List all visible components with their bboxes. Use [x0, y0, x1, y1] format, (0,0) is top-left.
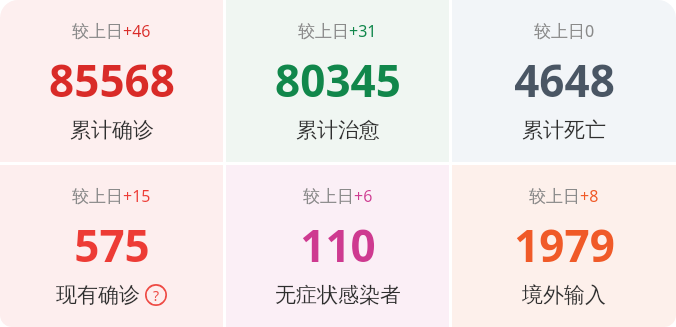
- staticText: 累计死亡: [522, 117, 606, 143]
- staticText: 575: [74, 215, 150, 275]
- button[interactable]: 较上日: [226, 165, 449, 327]
- button[interactable]: 较上日: [0, 165, 223, 327]
- staticText: 较上日: [72, 186, 123, 207]
- staticText: 较上日: [534, 21, 585, 42]
- button[interactable]: 较上日: [452, 0, 676, 162]
- button[interactable]: 较上日: [452, 165, 676, 327]
- button[interactable]: 较上日: [0, 0, 223, 162]
- staticText: 现有确诊: [56, 282, 140, 308]
- staticText: 1979: [514, 215, 615, 275]
- staticText: +6: [354, 185, 373, 207]
- staticText: 0: [585, 20, 595, 42]
- staticText: 4648: [514, 50, 615, 110]
- staticText: +46: [123, 20, 151, 42]
- staticText: 较上日: [72, 21, 123, 42]
- staticText: 80345: [275, 50, 401, 110]
- staticText: 累计治愈: [296, 117, 380, 143]
- staticText: 无症状感染者: [275, 282, 401, 308]
- button[interactable]: 帮助说明: [145, 284, 167, 306]
- staticText: 境外输入: [522, 282, 606, 308]
- staticText: +15: [123, 185, 151, 207]
- staticText: ?: [153, 286, 160, 305]
- staticText: 较上日: [529, 186, 580, 207]
- staticText: 85568: [49, 50, 175, 110]
- staticText: 较上日: [298, 21, 349, 42]
- button[interactable]: 较上日: [226, 0, 449, 162]
- staticText: +31: [349, 20, 377, 42]
- staticText: 110: [300, 215, 376, 275]
- staticText: 较上日: [303, 186, 354, 207]
- staticText: +8: [580, 185, 599, 207]
- staticText: 累计确诊: [70, 117, 154, 143]
